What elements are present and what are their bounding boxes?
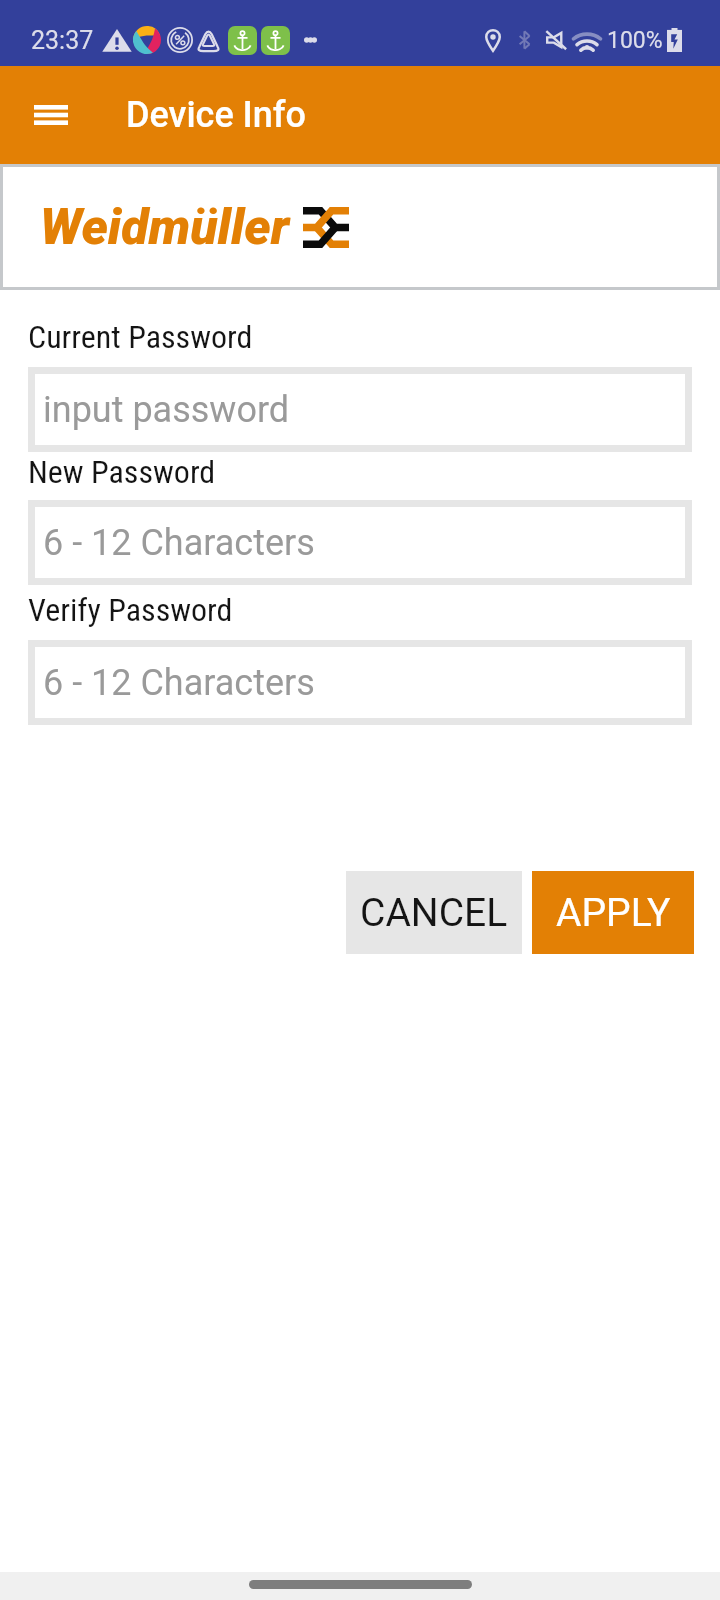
button[interactable]: input password (28, 367, 692, 452)
button[interactable]: APPLY (532, 871, 694, 954)
staticText: Weidmüller (40, 198, 290, 257)
staticText: Current Password (28, 318, 253, 356)
staticText: 23:37 (31, 26, 94, 55)
staticText: APPLY (556, 890, 671, 936)
staticText: 6 - 12 Characters (43, 662, 315, 704)
button[interactable]: CANCEL (346, 871, 522, 954)
staticText: Device Info (126, 94, 306, 136)
staticText: CANCEL (360, 890, 508, 936)
staticText: input password (43, 389, 290, 431)
staticText: 100% (607, 27, 663, 54)
staticText: New Password (28, 453, 216, 491)
staticText: 6 - 12 Characters (43, 522, 315, 564)
staticText: Verify Password (28, 591, 233, 629)
button[interactable]: Open navigation menu (18, 82, 84, 148)
button[interactable]: 6 - 12 Characters (28, 640, 692, 725)
button[interactable]: 6 - 12 Characters (28, 500, 692, 585)
